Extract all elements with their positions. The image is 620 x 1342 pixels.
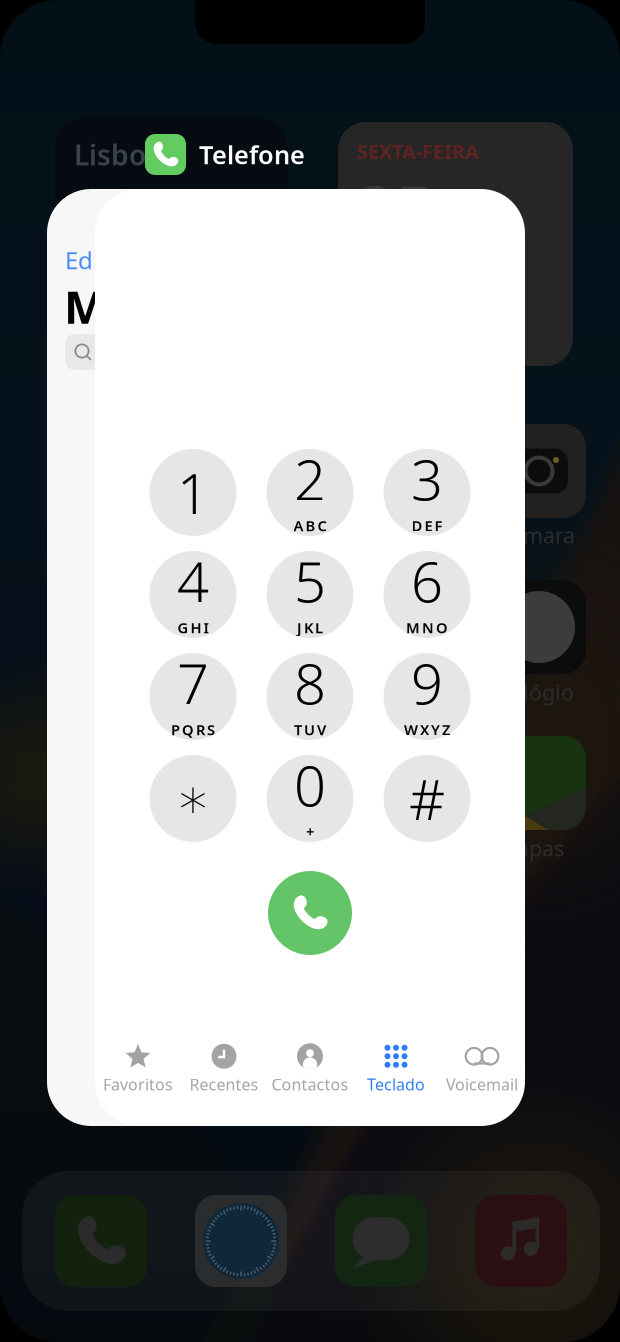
- staticText: P Q R S: [171, 720, 215, 739]
- staticText: Edit: [65, 244, 108, 276]
- staticText: D E F: [411, 516, 442, 535]
- staticText: 7: [177, 646, 209, 720]
- button[interactable]: 6: [383, 551, 470, 638]
- staticText: 6: [411, 544, 443, 618]
- button[interactable]: Voicemail: [439, 1035, 525, 1099]
- staticText: Câmara: [498, 521, 575, 549]
- button[interactable]: 8: [266, 653, 353, 740]
- button[interactable]: ∗: [149, 755, 236, 842]
- button[interactable]: 4: [149, 551, 236, 638]
- button[interactable]: Favoritos: [95, 1035, 181, 1099]
- staticText: 8: [294, 646, 326, 720]
- staticText: W X Y Z: [404, 720, 450, 739]
- staticText: 3: [411, 442, 443, 516]
- staticText: T U V: [294, 720, 326, 739]
- staticText: Lisboa: [74, 136, 162, 173]
- staticText: 25: [357, 165, 433, 253]
- button[interactable]: Recentes: [181, 1035, 267, 1099]
- button[interactable]: #: [383, 755, 470, 842]
- button[interactable]: 9: [383, 653, 470, 740]
- staticText: 5: [294, 544, 326, 618]
- staticText: J K L: [297, 618, 323, 637]
- staticText: #: [409, 761, 445, 836]
- staticText: Relógio: [498, 678, 574, 706]
- button[interactable]: 7: [149, 653, 236, 740]
- staticText: 9: [411, 646, 443, 720]
- button[interactable]: Teclado: [353, 1035, 439, 1099]
- staticText: Teclado: [367, 1074, 425, 1095]
- button[interactable]: Contactos: [267, 1035, 353, 1099]
- button[interactable]: 5: [266, 551, 353, 638]
- staticText: 4: [177, 544, 209, 618]
- staticText: G H I: [177, 618, 208, 637]
- staticText: 2: [294, 442, 326, 516]
- staticText: Contactos: [271, 1074, 348, 1095]
- staticText: 1: [177, 455, 209, 530]
- button[interactable]: 3: [383, 449, 470, 536]
- staticText: Telefone: [199, 138, 305, 171]
- button[interactable]: 1: [149, 449, 236, 536]
- staticText: Recentes: [189, 1074, 258, 1095]
- staticText: Mapas: [498, 834, 564, 862]
- staticText: M N O: [406, 618, 448, 637]
- staticText: Favoritos: [103, 1074, 173, 1095]
- staticText: +: [306, 822, 314, 841]
- staticText: Voicemail: [446, 1074, 518, 1095]
- button[interactable]: 2: [266, 449, 353, 536]
- staticText: ∗: [175, 767, 210, 830]
- staticText: M: [64, 276, 107, 336]
- button[interactable]: 0: [266, 755, 353, 842]
- staticText: 0: [294, 748, 326, 822]
- button[interactable]: Call: [268, 871, 352, 955]
- staticText: SEXTA-FEIRA: [357, 138, 479, 165]
- staticText: 14:48: [74, 173, 239, 258]
- staticText: A B C: [293, 516, 326, 535]
